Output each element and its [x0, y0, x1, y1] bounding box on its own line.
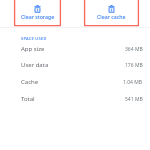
button[interactable]: App size: [0, 41, 150, 58]
staticText: Total: [21, 95, 35, 103]
button[interactable]: Cache: [0, 74, 150, 91]
staticText: SPACE USED: [21, 36, 47, 41]
button[interactable]: Clear storage: [14, 0, 61, 26]
staticText: Clear storage: [21, 13, 55, 20]
staticText: 541 MB: [125, 96, 143, 103]
staticText: 364 MB: [125, 46, 143, 53]
staticText: 176 MB: [125, 62, 143, 69]
staticText: 1.04 MB: [123, 79, 143, 86]
button[interactable]: User data: [0, 57, 150, 74]
staticText: Clear cache: [97, 13, 126, 20]
button[interactable]: Total: [0, 91, 150, 108]
button[interactable]: Clear cache: [84, 0, 139, 26]
staticText: User data: [21, 61, 49, 69]
staticText: App size: [21, 45, 45, 53]
staticText: Cache: [21, 78, 39, 86]
